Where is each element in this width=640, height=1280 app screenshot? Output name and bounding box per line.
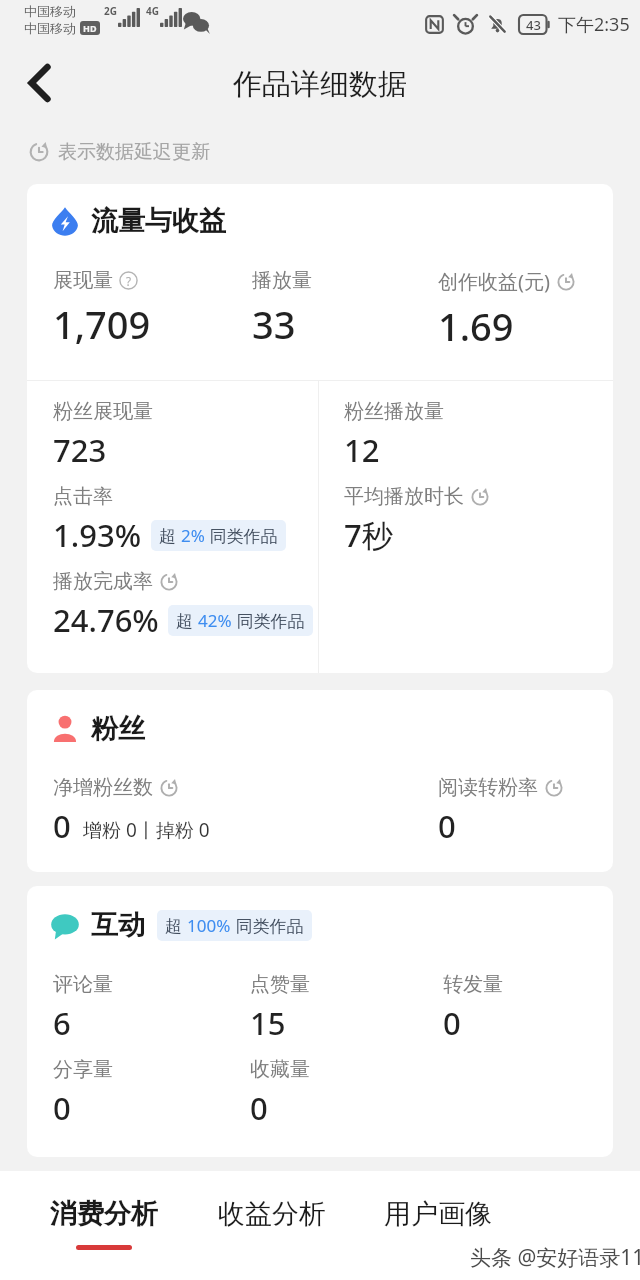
staticText: 4G bbox=[146, 4, 159, 18]
staticText: 中国移动 bbox=[24, 20, 76, 36]
staticText: 0 bbox=[250, 1087, 268, 1129]
staticText: 24.76% bbox=[53, 599, 159, 641]
staticText: 粉丝展现量 bbox=[53, 399, 153, 424]
staticText: 净增粉丝数 bbox=[53, 775, 153, 800]
staticText: 作品详细数据 bbox=[233, 66, 407, 103]
staticText: 15 bbox=[250, 1002, 286, 1044]
staticText: 创作收益(元) bbox=[438, 268, 550, 295]
staticText: 0 bbox=[438, 805, 456, 847]
button[interactable]: 消费分析 bbox=[50, 1197, 158, 1250]
staticText: 0 bbox=[443, 1002, 461, 1044]
staticText: HD bbox=[83, 22, 97, 34]
staticText: 同类作品 bbox=[205, 524, 278, 547]
staticText: 表示数据延迟更新 bbox=[58, 140, 210, 164]
staticText: 转发量 bbox=[443, 972, 503, 997]
staticText: 同类作品 bbox=[231, 914, 304, 937]
staticText: 中国移动 bbox=[24, 3, 76, 19]
staticText: 2G bbox=[104, 4, 117, 18]
staticText: 超 bbox=[159, 524, 181, 547]
staticText: 收藏量 bbox=[250, 1057, 310, 1082]
staticText: 平均播放时长 bbox=[344, 484, 464, 509]
staticText: 阅读转粉率 bbox=[438, 775, 538, 800]
staticText: 1.93% bbox=[53, 514, 142, 556]
staticText: 100% bbox=[187, 914, 231, 937]
button[interactable]: Back bbox=[14, 58, 64, 108]
staticText: 超 bbox=[176, 609, 198, 632]
staticText: 点击率 bbox=[53, 484, 113, 509]
staticText: 互动 bbox=[91, 908, 145, 942]
staticText: 同类作品 bbox=[232, 609, 305, 632]
staticText: 播放完成率 bbox=[53, 569, 153, 594]
staticText: 42% bbox=[198, 609, 232, 632]
staticText: 2% bbox=[181, 524, 205, 547]
staticText: 评论量 bbox=[53, 972, 113, 997]
staticText: 43 bbox=[526, 16, 541, 34]
staticText: 6 bbox=[53, 1002, 71, 1044]
staticText: 0 bbox=[53, 805, 71, 847]
staticText: 收益分析 bbox=[218, 1197, 326, 1231]
staticText: 流量与收益 bbox=[91, 204, 226, 238]
staticText: 播放量 bbox=[252, 268, 312, 293]
button[interactable]: 用户画像 bbox=[384, 1197, 492, 1245]
staticText: 723 bbox=[53, 429, 107, 471]
staticText: 消费分析 bbox=[50, 1197, 158, 1231]
staticText: 0 bbox=[53, 1087, 71, 1129]
staticText: 点赞量 bbox=[250, 972, 310, 997]
staticText: 头条 @安好语录11 bbox=[470, 1243, 640, 1272]
staticText: 1.69 bbox=[438, 300, 514, 352]
staticText: 分享量 bbox=[53, 1057, 113, 1082]
staticText: ? bbox=[126, 273, 132, 289]
staticText: 用户画像 bbox=[384, 1197, 492, 1231]
button[interactable]: 收益分析 bbox=[218, 1197, 326, 1245]
staticText: 超 bbox=[165, 914, 187, 937]
staticText: 1,709 bbox=[53, 298, 151, 350]
staticText: 下午2:35 bbox=[558, 12, 630, 37]
staticText: 12 bbox=[344, 429, 380, 471]
staticText: 展现量 bbox=[53, 268, 113, 293]
staticText: 7秒 bbox=[344, 514, 393, 556]
staticText: 粉丝 bbox=[91, 712, 145, 746]
staticText: 粉丝播放量 bbox=[344, 399, 444, 424]
staticText: 33 bbox=[252, 298, 296, 350]
staticText: 增粉 0丨掉粉 0 bbox=[83, 817, 210, 843]
